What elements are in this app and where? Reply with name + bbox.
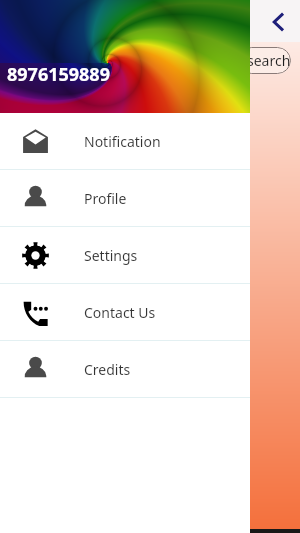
staticText: Credits [84,360,131,379]
staticText: search [247,51,291,70]
staticText: 8976159889 [7,62,110,87]
button[interactable]: Contact Us [0,284,250,340]
button[interactable]: Back [272,12,285,32]
staticText: Profile [84,189,127,208]
button[interactable]: Settings [0,227,250,283]
staticText: Settings [84,246,138,265]
button[interactable]: Credits [0,341,250,397]
button[interactable]: search [238,47,291,74]
staticText: Notification [84,132,161,151]
staticText: Contact Us [84,303,156,322]
button[interactable]: Notification [0,113,250,169]
button[interactable]: Profile [0,170,250,226]
